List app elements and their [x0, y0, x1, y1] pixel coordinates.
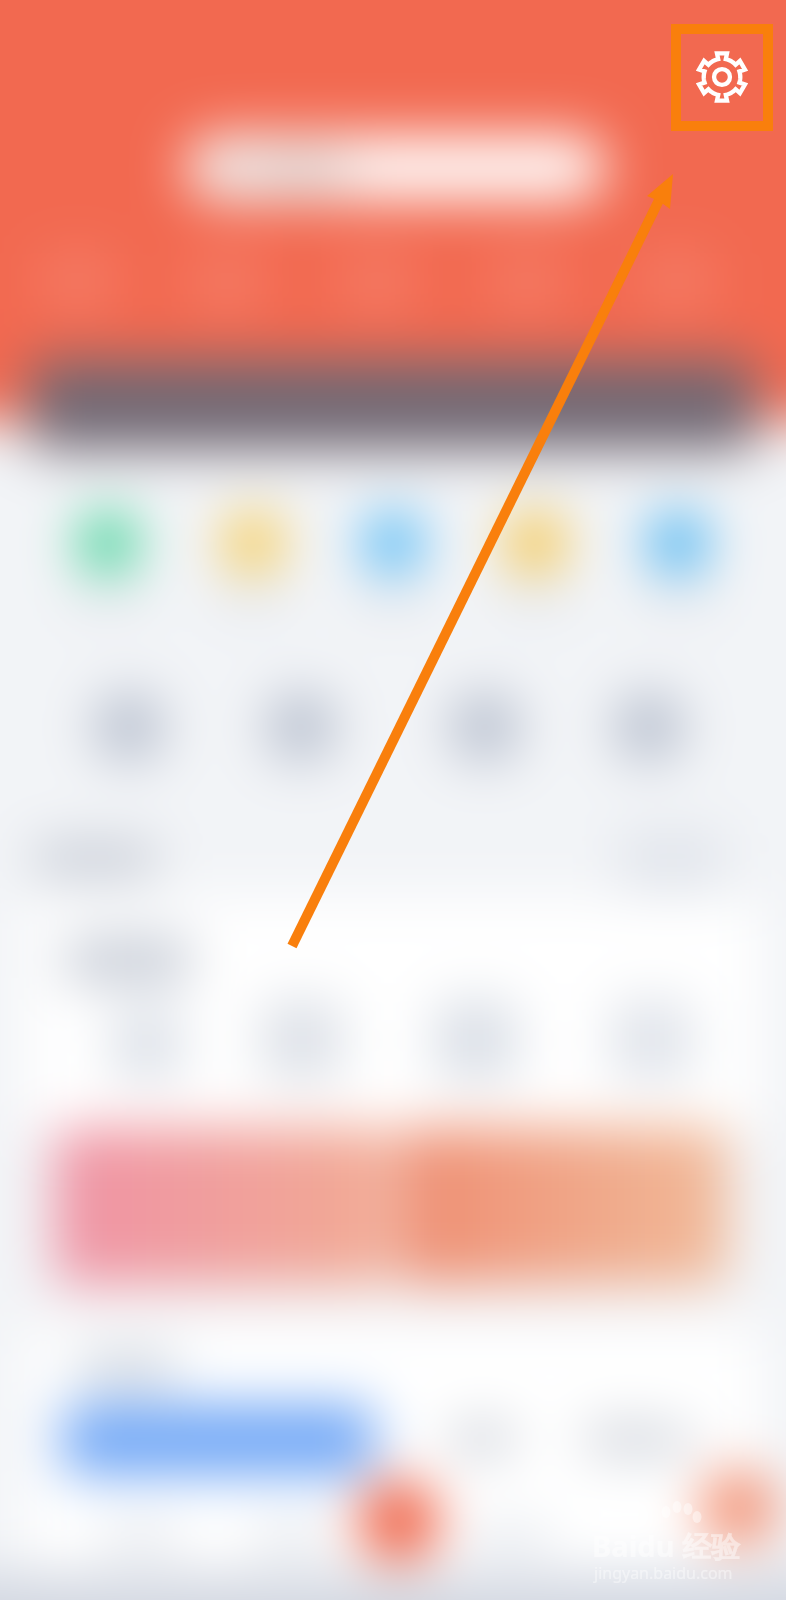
button[interactable] — [80, 515, 136, 571]
button[interactable] — [450, 692, 520, 762]
button[interactable] — [436, 1000, 516, 1080]
button[interactable] — [612, 1000, 692, 1080]
button[interactable] — [225, 515, 281, 571]
staticText: jingyan.baidu.com — [594, 1562, 733, 1584]
button[interactable] — [398, 1128, 728, 1284]
button[interactable] — [650, 515, 706, 571]
button[interactable] — [94, 692, 164, 762]
staticText: Baidu 经验 — [592, 1526, 741, 1566]
button[interactable] — [112, 1012, 182, 1078]
button[interactable] — [614, 692, 684, 762]
button[interactable] — [365, 515, 421, 571]
button[interactable] — [507, 515, 563, 571]
button[interactable] — [55, 1128, 390, 1284]
button[interactable] — [266, 692, 336, 762]
button[interactable] — [30, 360, 756, 450]
button[interactable] — [62, 1405, 375, 1475]
button[interactable] — [186, 136, 606, 200]
button[interactable]: Settings — [676, 29, 768, 126]
button[interactable] — [262, 1000, 342, 1080]
